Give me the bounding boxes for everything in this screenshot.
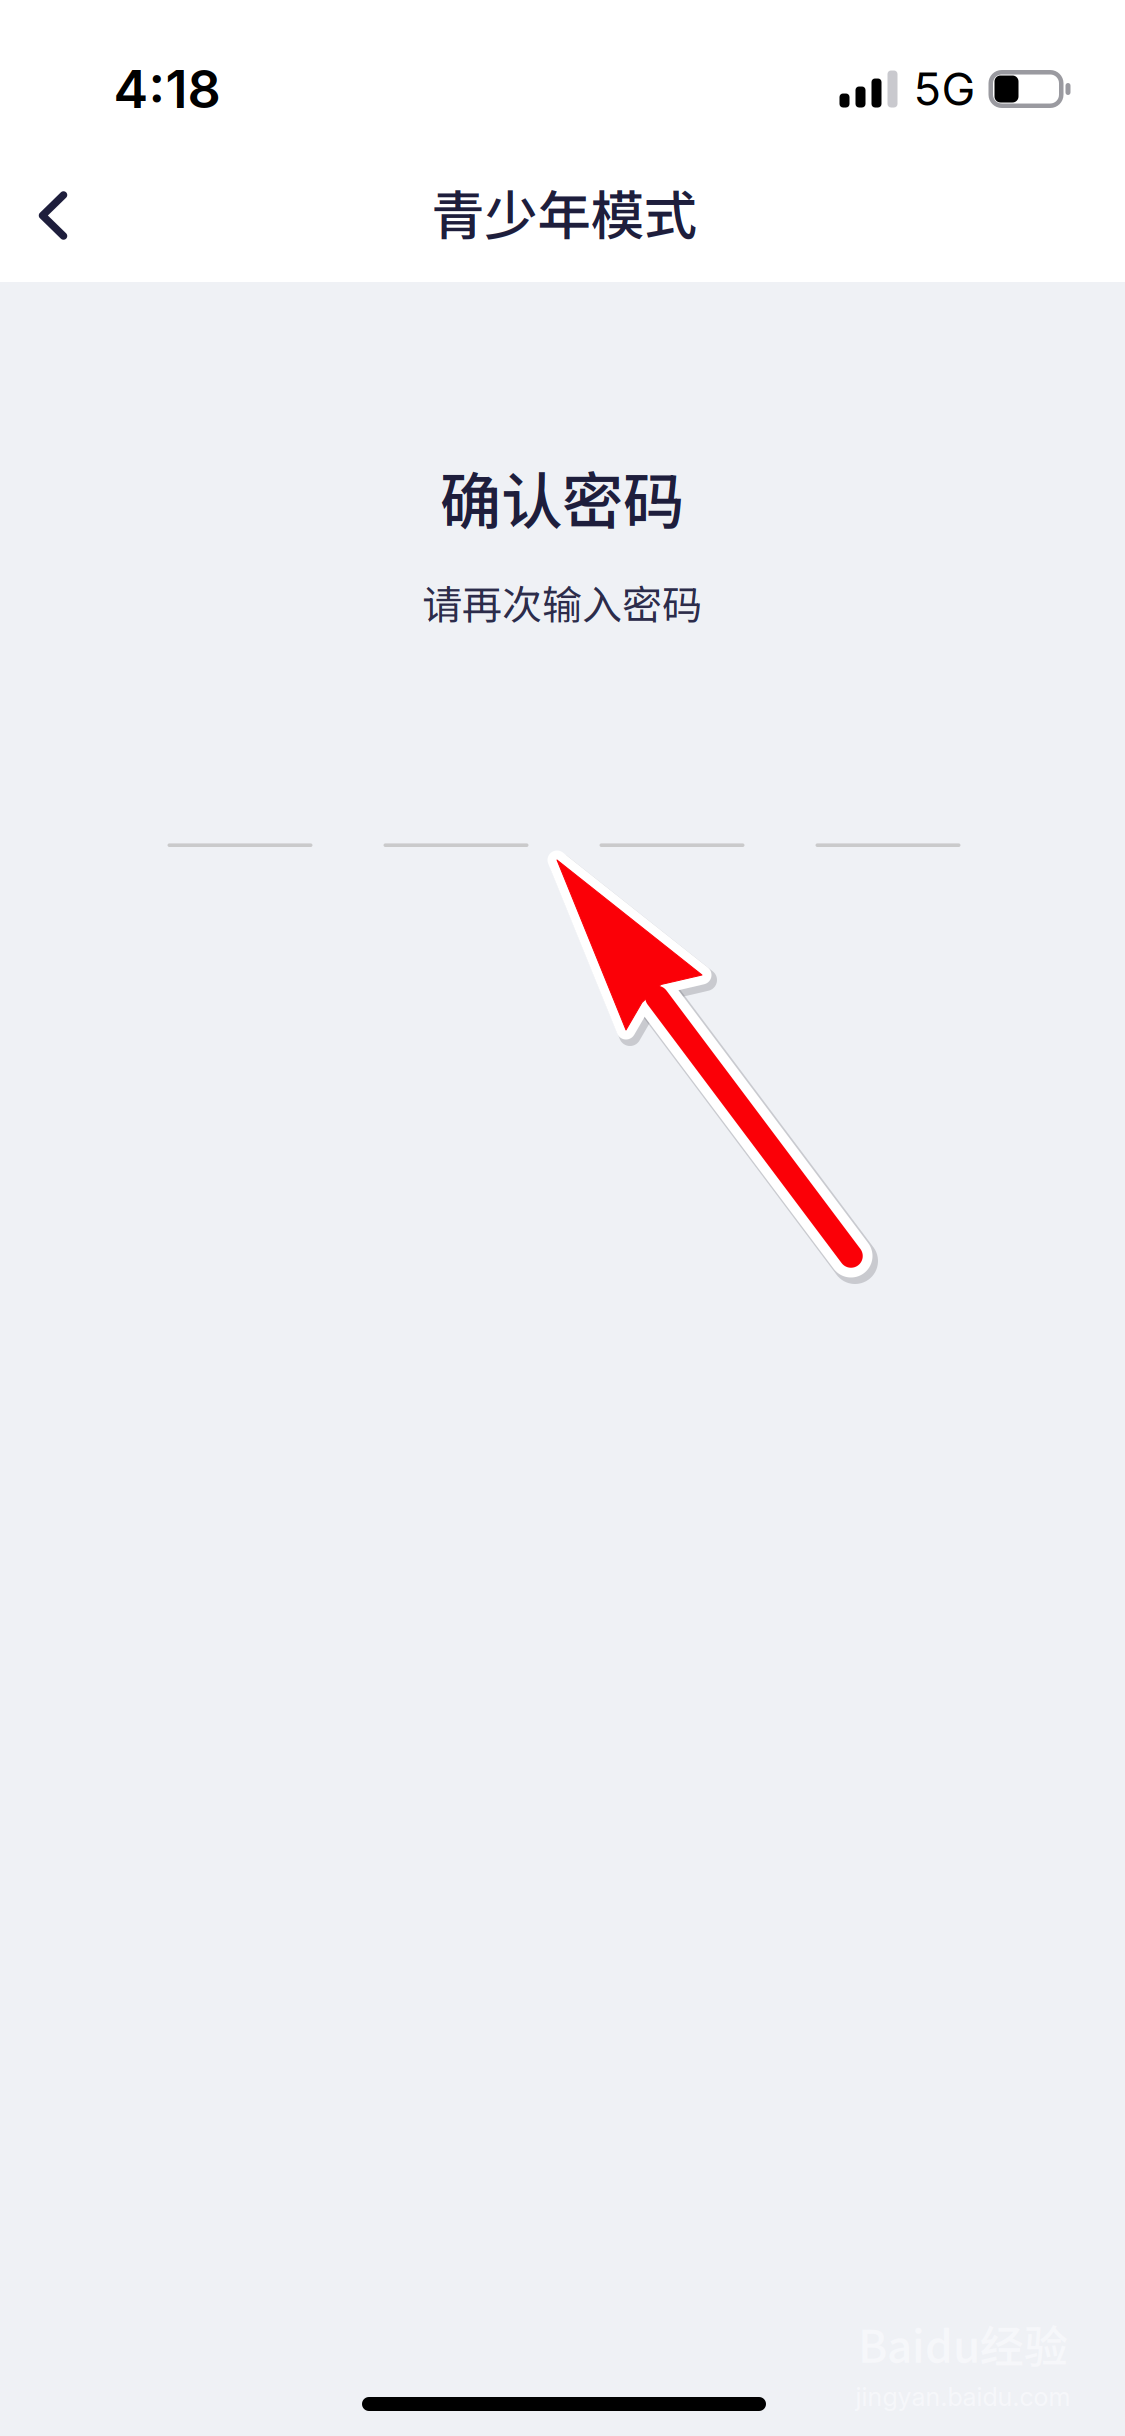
- staticText: 请再次输入密码: [422, 573, 702, 631]
- staticText: 确认密码: [440, 453, 684, 541]
- staticText: 青少年模式: [431, 173, 696, 251]
- button[interactable]: Password entry: [167, 751, 960, 847]
- staticText: 5G: [913, 62, 975, 116]
- button[interactable]: Back: [0, 161, 107, 269]
- staticText: 4:18: [113, 57, 220, 120]
